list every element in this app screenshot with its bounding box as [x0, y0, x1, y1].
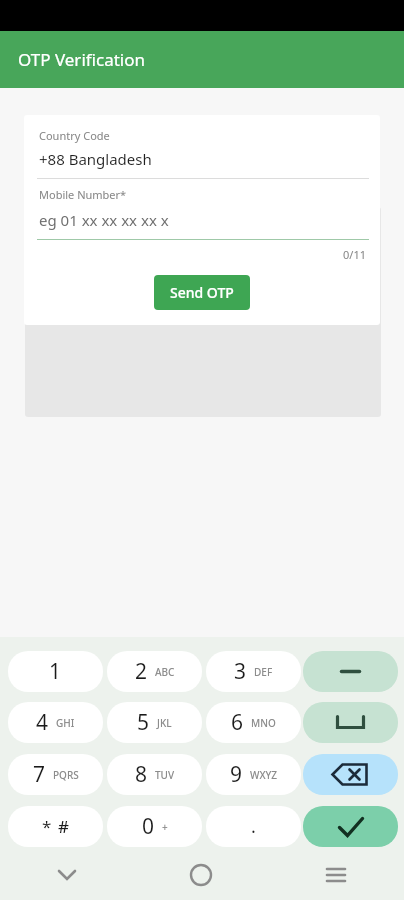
staticText: 7 — [33, 760, 46, 789]
staticText: MNO — [251, 716, 276, 730]
button[interactable]: eg 01 xx xx xx xx x — [24, 210, 380, 230]
button[interactable]: Backspace — [303, 754, 398, 795]
button[interactable]: 3 — [206, 651, 301, 692]
staticText: WXYZ — [250, 768, 278, 782]
button[interactable]: +88 Bangladesh — [24, 149, 380, 169]
staticText: 3 — [234, 657, 247, 686]
staticText: 4 — [36, 708, 49, 737]
button[interactable]: 1 — [8, 651, 103, 692]
button[interactable]: Space — [303, 702, 398, 743]
staticText: PQRS — [53, 768, 79, 782]
staticText: 6 — [231, 708, 244, 737]
staticText: . — [251, 814, 256, 839]
staticText: 8 — [135, 760, 148, 789]
button[interactable]: 0 — [107, 806, 202, 847]
button[interactable]: 8 — [107, 754, 202, 795]
staticText: 2 — [135, 657, 148, 686]
button[interactable]: Enter — [303, 806, 398, 847]
staticText: GHI — [56, 716, 75, 730]
staticText: # — [58, 815, 69, 838]
staticText: Country Code — [39, 128, 110, 143]
staticText: Mobile Number* — [39, 187, 127, 202]
button[interactable]: 4 — [8, 702, 103, 743]
button[interactable]: 5 — [107, 702, 202, 743]
staticText: 0 — [142, 812, 155, 841]
button[interactable]: 6 — [206, 702, 301, 743]
staticText: Send OTP — [170, 283, 234, 302]
staticText: eg 01 xx xx xx xx x — [39, 210, 169, 230]
staticText: * — [42, 815, 52, 838]
staticText: 9 — [230, 760, 243, 789]
staticText: TUV — [155, 768, 175, 782]
button[interactable]: * — [8, 806, 103, 847]
button[interactable]: Home — [134, 850, 268, 900]
staticText: DEF — [254, 665, 273, 679]
staticText: 1 — [49, 657, 62, 686]
button[interactable]: Send OTP — [154, 275, 250, 310]
staticText: +88 Bangladesh — [39, 149, 152, 169]
staticText: JKL — [157, 716, 172, 730]
button[interactable]: Recent apps — [268, 850, 404, 900]
button[interactable]: 7 — [8, 754, 103, 795]
staticText: + — [162, 820, 168, 834]
button[interactable]: 9 — [206, 754, 301, 795]
button[interactable]: . — [206, 806, 301, 847]
staticText: 5 — [137, 708, 150, 737]
button[interactable]: 2 — [107, 651, 202, 692]
staticText: 0/11 — [24, 247, 366, 262]
staticText: OTP Verification — [18, 48, 146, 71]
button[interactable]: Dash — [303, 651, 398, 692]
staticText: ABC — [155, 665, 175, 679]
button[interactable]: Hide keyboard — [0, 850, 134, 900]
